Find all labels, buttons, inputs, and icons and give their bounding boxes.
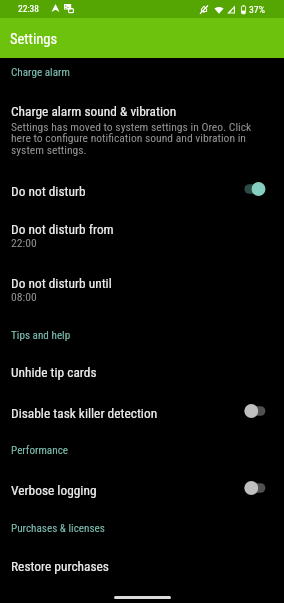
other: Silent mode	[200, 5, 208, 14]
staticText: Charge alarm sound & vibration	[11, 104, 177, 120]
button[interactable]: Do not disturb from	[0, 222, 284, 252]
staticText: Do not disturb from	[11, 222, 114, 238]
staticText: Settings	[10, 31, 58, 48]
button[interactable]: Unhide tip cards	[0, 362, 284, 384]
button[interactable]: Do not disturb	[0, 181, 284, 203]
staticText: 37%	[249, 4, 265, 15]
staticText: Purchases & licenses	[11, 522, 105, 535]
button[interactable]: Restore purchases	[0, 556, 284, 578]
other: Battery 37 percent	[241, 5, 246, 14]
staticText: 22:00	[11, 236, 37, 250]
button[interactable]: Disable task killer detection	[0, 403, 284, 425]
other: Mobile signal	[228, 6, 235, 14]
staticText: Restore purchases	[11, 559, 109, 575]
staticText: 08:00	[11, 290, 37, 304]
staticText: Verbose logging	[11, 483, 246, 499]
staticText: Do not disturb	[11, 184, 246, 200]
button[interactable]: Do not disturb until	[0, 276, 284, 306]
staticText: Unhide tip cards	[11, 365, 97, 381]
staticText: 22:38	[18, 3, 39, 14]
staticText: Tips and help	[11, 329, 71, 342]
staticText: Performance	[11, 444, 69, 457]
button[interactable]: Charge alarm sound & vibration	[0, 104, 284, 157]
other: Wi-Fi	[214, 6, 224, 14]
button[interactable]: Verbose logging	[0, 480, 284, 502]
staticText: Charge alarm	[11, 66, 70, 79]
other: Location	[51, 4, 60, 12]
staticText: Disable task killer detection	[11, 406, 246, 422]
staticText: Settings has moved to system settings in…	[11, 120, 262, 157]
staticText: Do not disturb until	[11, 276, 112, 292]
